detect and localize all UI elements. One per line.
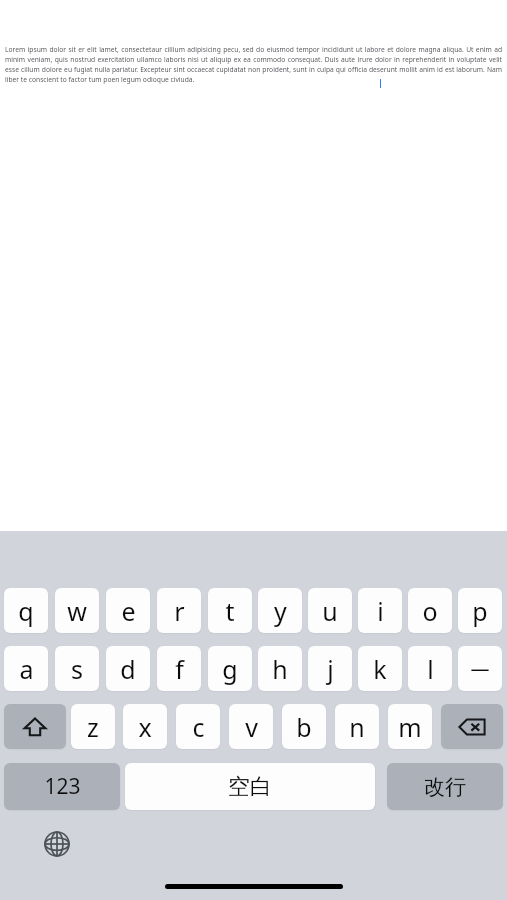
button[interactable]: n: [335, 704, 379, 749]
staticText: i: [377, 594, 384, 628]
staticText: s: [71, 652, 83, 686]
staticText: l: [427, 652, 434, 686]
button[interactable]: e: [106, 588, 150, 633]
button[interactable]: f: [157, 646, 201, 691]
staticText: q: [18, 594, 34, 628]
button[interactable]: b: [282, 704, 326, 749]
button[interactable]: r: [157, 588, 201, 633]
staticText: z: [87, 710, 99, 744]
staticText: x: [138, 710, 152, 744]
staticText: m: [398, 710, 422, 744]
button[interactable]: Shift: [4, 704, 66, 749]
button[interactable]: Switch keyboard: [37, 824, 77, 864]
staticText: 123: [44, 772, 81, 801]
staticText: p: [472, 594, 488, 628]
staticText: e: [121, 594, 136, 628]
button[interactable]: 123: [4, 763, 120, 810]
button[interactable]: y: [258, 588, 302, 633]
staticText: a: [19, 652, 34, 686]
staticText: v: [245, 710, 258, 744]
staticText: r: [174, 594, 185, 628]
staticText: u: [322, 594, 338, 628]
staticText: g: [222, 652, 238, 686]
button[interactable]: w: [55, 588, 99, 633]
button[interactable]: t: [208, 588, 252, 633]
staticText: f: [175, 652, 184, 686]
button[interactable]: l: [408, 646, 452, 691]
button[interactable]: Lorem ipsum dolor sit er elit lamet, con…: [0, 0, 507, 531]
staticText: c: [192, 710, 205, 744]
button[interactable]: m: [388, 704, 432, 749]
staticText: k: [373, 652, 387, 686]
button[interactable]: d: [106, 646, 150, 691]
button[interactable]: j: [308, 646, 352, 691]
staticText: 空白: [228, 773, 272, 801]
button[interactable]: —: [458, 646, 502, 691]
button[interactable]: Delete: [441, 704, 503, 749]
button[interactable]: h: [258, 646, 302, 691]
staticText: Lorem ipsum dolor sit er elit lamet, con…: [5, 45, 502, 84]
button[interactable]: z: [71, 704, 115, 749]
staticText: n: [349, 710, 365, 744]
staticText: h: [272, 652, 288, 686]
button[interactable]: o: [408, 588, 452, 633]
button[interactable]: g: [208, 646, 252, 691]
staticText: t: [225, 594, 235, 628]
button[interactable]: k: [358, 646, 402, 691]
button[interactable]: s: [55, 646, 99, 691]
staticText: w: [67, 594, 87, 628]
button[interactable]: x: [123, 704, 167, 749]
button[interactable]: 空白: [125, 763, 375, 810]
staticText: 改行: [424, 774, 466, 800]
staticText: y: [274, 594, 287, 628]
button[interactable]: 改行: [387, 763, 503, 810]
button[interactable]: a: [4, 646, 48, 691]
button[interactable]: p: [458, 588, 502, 633]
staticText: b: [296, 710, 312, 744]
button[interactable]: q: [4, 588, 48, 633]
button[interactable]: i: [358, 588, 402, 633]
staticText: o: [422, 594, 438, 628]
staticText: —: [470, 656, 490, 682]
button[interactable]: v: [229, 704, 273, 749]
button[interactable]: c: [176, 704, 220, 749]
staticText: d: [120, 652, 136, 686]
button[interactable]: u: [308, 588, 352, 633]
staticText: j: [327, 652, 334, 686]
